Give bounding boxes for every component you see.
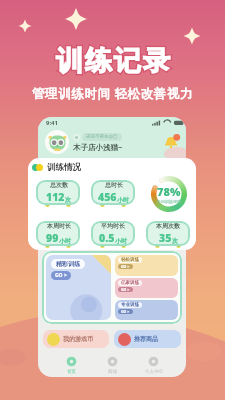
staticText: 本周时长: [47, 222, 71, 230]
staticText: 112: [46, 190, 65, 204]
staticText: 亿家训练: [121, 280, 139, 286]
staticText: 还没不要包自己: [86, 134, 118, 140]
button[interactable]: 推荐商品: [114, 330, 181, 348]
staticText: 轻松训练: [121, 257, 139, 263]
button[interactable]: 总时长: [91, 180, 135, 205]
button[interactable]: 轻松训练: [115, 255, 178, 276]
staticText: 小时: [59, 237, 71, 245]
staticText: 35: [159, 231, 172, 245]
staticText: 管理训练时间 轻松改善视力: [32, 85, 194, 102]
staticText: 本周次数: [156, 222, 180, 230]
staticText: 精彩训练: [56, 260, 80, 268]
staticText: 总次数: [50, 181, 68, 189]
staticText: 平均时长: [101, 222, 125, 230]
staticText: 次: [65, 196, 71, 204]
staticText: 次: [172, 237, 178, 245]
staticText: GO >: [121, 264, 130, 269]
staticText: 我的游戏币: [63, 335, 93, 343]
staticText: 商城: [108, 369, 117, 375]
button[interactable]: 我的游戏币: [43, 330, 109, 348]
button[interactable]: 个人中心: [133, 353, 174, 377]
button[interactable]: 精彩训练: [46, 255, 111, 320]
staticText: 推荐商品: [134, 335, 158, 343]
staticText: 首页: [67, 369, 76, 375]
button[interactable]: 本周时长: [36, 221, 80, 246]
staticText: GO >: [121, 309, 130, 314]
button[interactable]: 总次数: [36, 180, 80, 205]
staticText: 专业训练: [121, 302, 139, 308]
button[interactable]: 亿家训练: [115, 278, 178, 298]
staticText: 小时: [115, 237, 127, 245]
staticText: 训练记录: [55, 44, 171, 78]
button[interactable]: Notifications: [162, 133, 180, 151]
staticText: 9:41: [46, 119, 58, 127]
staticText: 今日训练强度: [157, 199, 181, 204]
staticText: 总时长: [105, 181, 123, 189]
staticText: 0.5: [99, 231, 115, 245]
staticText: 训练情况: [47, 162, 81, 172]
staticText: 456: [98, 190, 117, 204]
button[interactable]: 本周次数: [146, 221, 190, 246]
button[interactable]: 商城: [92, 353, 133, 377]
staticText: 个人中心: [145, 369, 163, 375]
staticText: 99: [46, 231, 59, 245]
button[interactable]: 首页: [50, 353, 92, 377]
staticText: GO >: [121, 287, 130, 292]
staticText: GO >: [55, 272, 67, 279]
button[interactable]: 专业训练: [115, 300, 178, 320]
staticText: 木子店小浅猫~: [73, 142, 123, 152]
button[interactable]: 平均时长: [91, 221, 135, 246]
staticText: 小时: [117, 196, 129, 204]
staticText: 训练记录: [55, 44, 171, 78]
staticText: 78%: [157, 184, 181, 199]
